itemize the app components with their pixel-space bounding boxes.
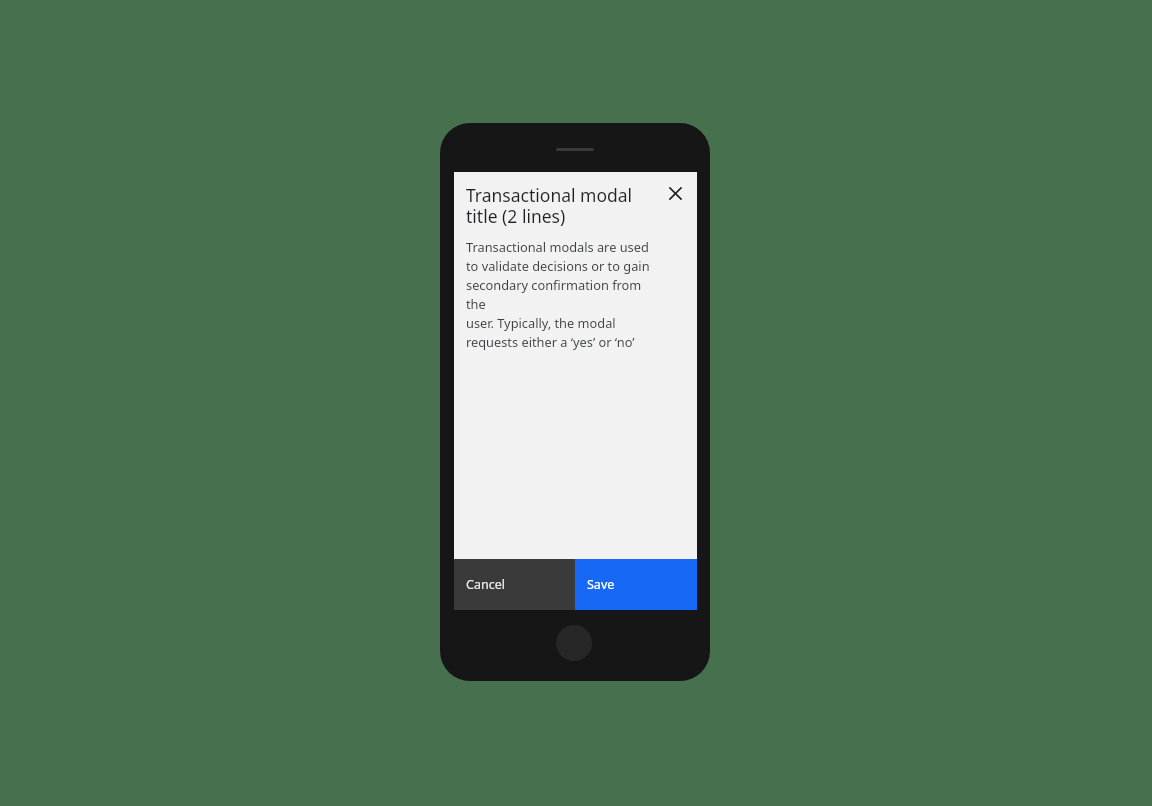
- staticText: Save: [587, 576, 615, 593]
- button[interactable]: Home: [556, 625, 592, 661]
- staticText: Transactional modal title (2 lines): [466, 183, 633, 228]
- staticText: Transactional modals are used to validat…: [466, 238, 661, 351]
- button[interactable]: Save: [575, 559, 697, 610]
- button[interactable]: Cancel: [454, 559, 575, 610]
- button[interactable]: Close: [659, 177, 691, 209]
- staticText: Cancel: [466, 576, 505, 593]
